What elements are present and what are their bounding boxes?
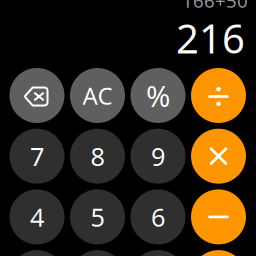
button[interactable]: 9 (130, 129, 185, 184)
button[interactable]: Delete (9, 68, 64, 123)
staticText: 166+50 (182, 0, 248, 13)
button[interactable]: 7 (9, 129, 64, 184)
staticText: 216 (176, 11, 245, 64)
button[interactable]: Minus (191, 189, 246, 244)
button[interactable]: Divide (191, 68, 246, 123)
button[interactable]: % (130, 68, 185, 123)
button[interactable]: 1 (9, 250, 64, 256)
staticText: 5 (90, 200, 104, 234)
button[interactable]: 8 (70, 129, 125, 184)
staticText: 8 (90, 139, 104, 173)
staticText: AC (82, 80, 112, 111)
staticText: 7 (30, 139, 44, 173)
button[interactable]: 4 (9, 189, 64, 244)
staticText: 6 (151, 200, 165, 234)
staticText: 9 (151, 139, 165, 173)
button[interactable]: 2 (70, 250, 125, 256)
button[interactable]: AC (70, 68, 125, 123)
button[interactable]: Plus (191, 250, 246, 256)
staticText: % (146, 76, 170, 115)
button[interactable]: 5 (70, 189, 125, 244)
staticText: 4 (30, 200, 44, 234)
button[interactable]: 6 (130, 189, 185, 244)
button[interactable]: 3 (130, 250, 185, 256)
button[interactable]: Multiply (191, 129, 246, 184)
